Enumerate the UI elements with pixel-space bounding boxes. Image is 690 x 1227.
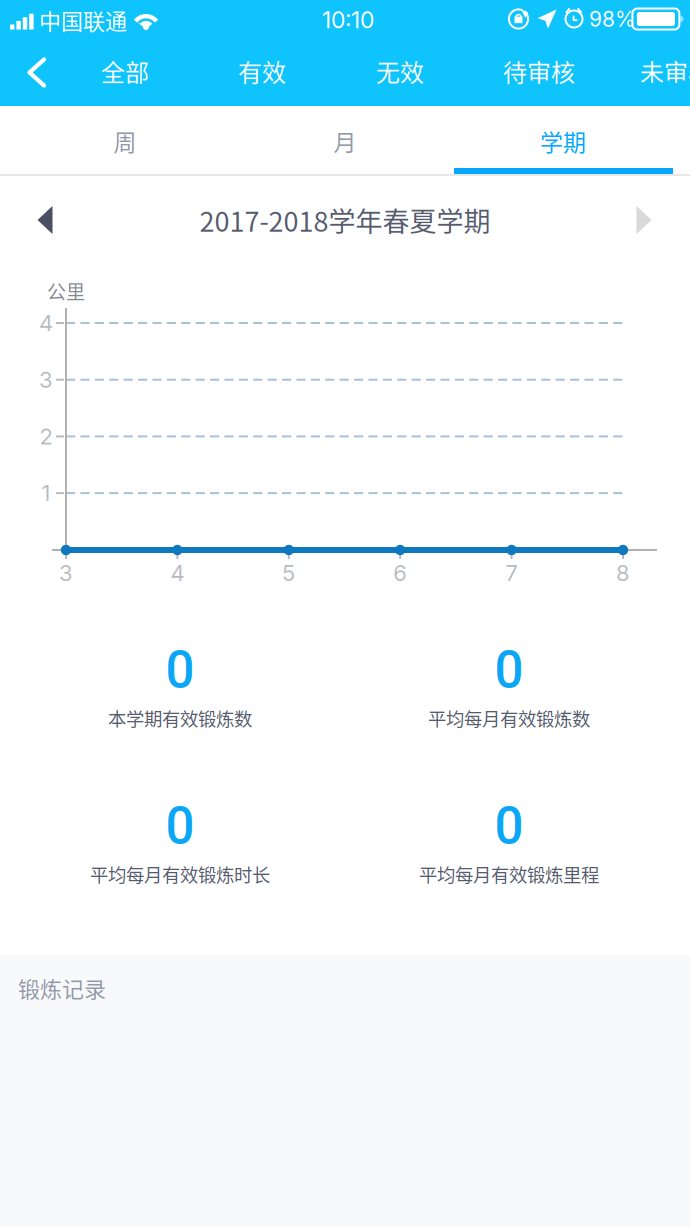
staticText: 5 bbox=[282, 560, 295, 586]
button[interactable]: Back bbox=[6, 40, 68, 106]
staticText: 有效 bbox=[238, 54, 286, 88]
button[interactable]: 全部 bbox=[73, 38, 177, 104]
staticText: 0 bbox=[494, 796, 523, 856]
staticText: 平均每月有效锻炼里程 bbox=[419, 861, 599, 887]
staticText: 学期 bbox=[540, 124, 586, 158]
staticText: 98% bbox=[589, 6, 635, 32]
button[interactable]: 学期 bbox=[449, 108, 677, 174]
staticText: 锻炼记录 bbox=[18, 972, 106, 1004]
staticText: 周 bbox=[113, 124, 136, 158]
button[interactable]: 周 bbox=[11, 108, 239, 174]
button[interactable]: Next term bbox=[606, 188, 682, 252]
staticText: 无效 bbox=[376, 54, 424, 88]
staticText: 4 bbox=[39, 310, 53, 336]
staticText: 3 bbox=[59, 560, 73, 586]
button[interactable]: 月 bbox=[231, 108, 459, 174]
staticText: 3 bbox=[39, 366, 53, 393]
staticText: 1 bbox=[41, 480, 50, 506]
staticText: 6 bbox=[393, 560, 407, 586]
staticText: 0 bbox=[165, 796, 194, 856]
staticText: 7 bbox=[506, 560, 518, 586]
staticText: 公里 bbox=[47, 277, 85, 305]
staticText: 月 bbox=[333, 124, 356, 158]
staticText: 8 bbox=[616, 560, 630, 586]
staticText: 中国联通 bbox=[39, 4, 127, 36]
button[interactable]: 未审核 bbox=[640, 38, 690, 104]
staticText: 待审核 bbox=[503, 54, 575, 88]
staticText: 0 bbox=[165, 640, 194, 700]
staticText: 2 bbox=[39, 423, 52, 450]
staticText: 未审核 bbox=[640, 54, 690, 88]
button[interactable]: 有效 bbox=[210, 38, 314, 104]
staticText: 4 bbox=[170, 560, 184, 586]
staticText: 2017-2018学年春夏学期 bbox=[199, 200, 490, 240]
button[interactable]: 无效 bbox=[348, 38, 452, 104]
staticText: 平均每月有效锻炼数 bbox=[428, 705, 590, 731]
staticText: 0 bbox=[494, 640, 523, 700]
button[interactable]: 待审核 bbox=[481, 38, 597, 104]
staticText: 平均每月有效锻炼时长 bbox=[90, 861, 270, 887]
staticText: 本学期有效锻炼数 bbox=[108, 705, 252, 731]
staticText: 10:10 bbox=[322, 6, 374, 34]
staticText: 全部 bbox=[101, 54, 149, 88]
button[interactable]: Previous term bbox=[7, 188, 83, 252]
